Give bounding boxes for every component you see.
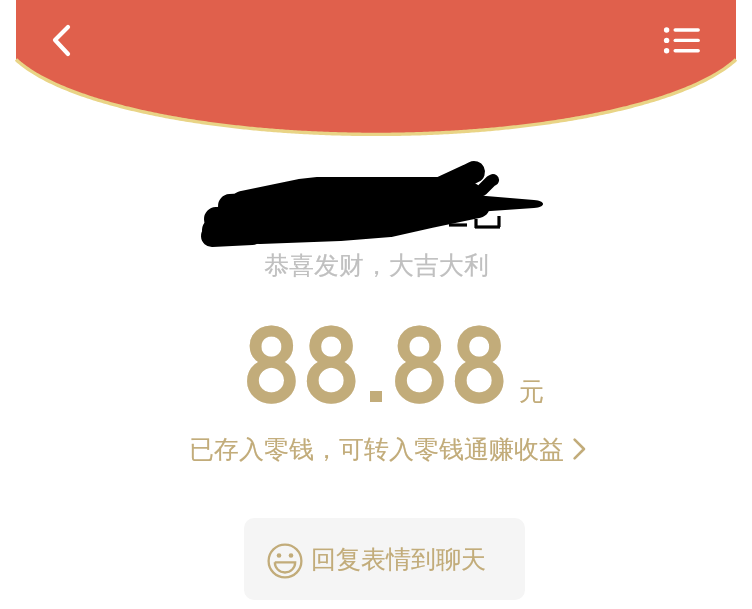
button[interactable]: 回复表情到聊天 (244, 518, 525, 600)
button[interactable]: Back (40, 18, 84, 62)
staticText: 回复表情到聊天 (311, 544, 486, 575)
staticText: 88 (243, 290, 363, 440)
staticText: 恭喜发财，大吉大利 (264, 250, 489, 281)
button[interactable]: Red packet records (658, 18, 706, 66)
button[interactable]: 已存入零钱，可转入零钱通赚收益 (189, 434, 586, 465)
staticText: 已存入零钱，可转入零钱通赚收益 (189, 434, 564, 465)
staticText: 元 (519, 376, 544, 407)
staticText: 88 (391, 290, 511, 440)
